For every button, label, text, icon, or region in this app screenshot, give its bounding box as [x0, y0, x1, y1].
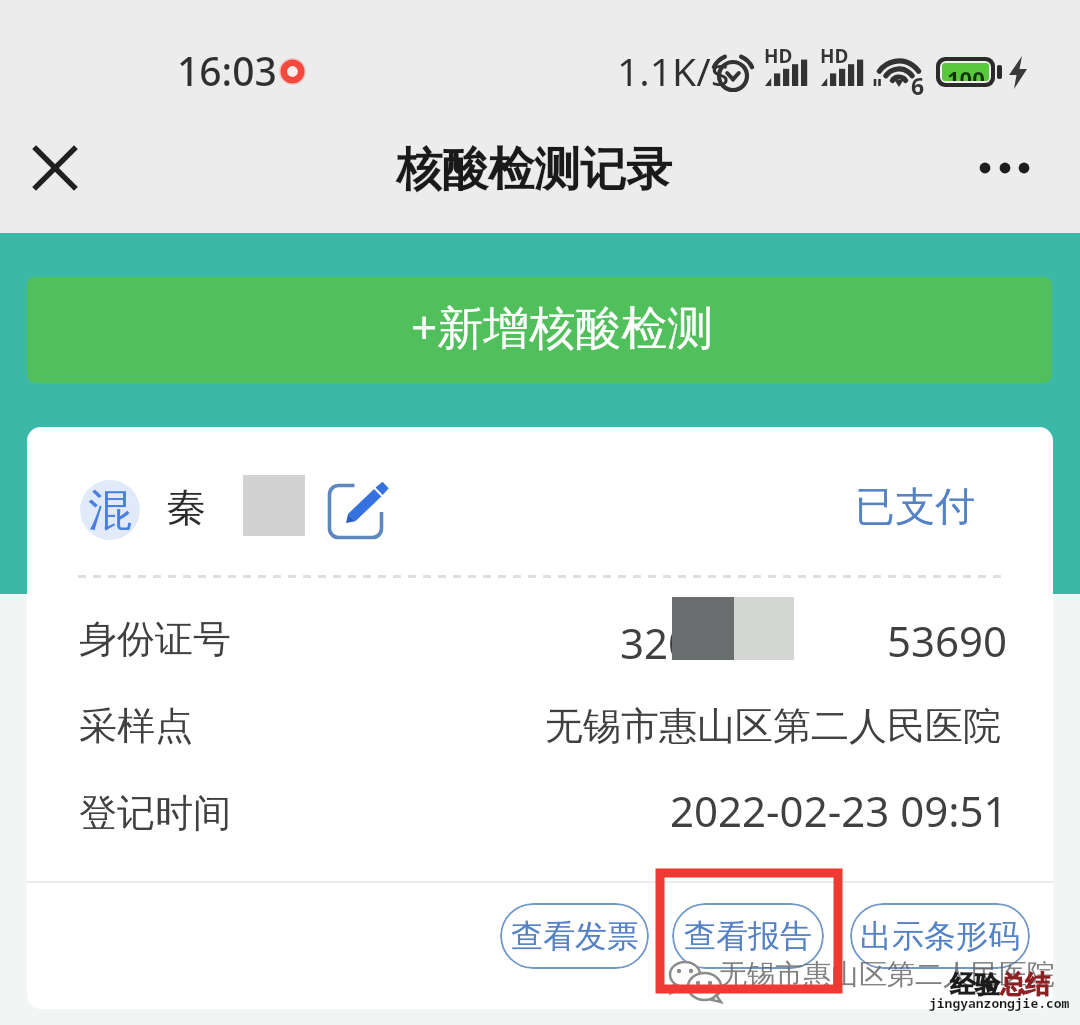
button[interactable]: Edit	[327, 482, 385, 538]
button[interactable]: More options	[956, 137, 1054, 199]
staticText: 身份证号	[79, 615, 231, 663]
staticText: HD	[764, 43, 793, 69]
staticText: 2022-02-23 09:51	[670, 782, 1008, 839]
staticText: 6	[911, 70, 925, 101]
button[interactable]: 查看报告	[672, 903, 824, 969]
staticText: 经验	[950, 969, 1000, 1000]
staticText: 核酸检测记录	[396, 141, 672, 199]
staticText: 采样点	[79, 702, 193, 750]
button[interactable]: 查看发票	[500, 903, 649, 969]
button[interactable]: Close	[9, 122, 101, 214]
staticText: 已支付	[855, 481, 975, 531]
staticText: 53690	[887, 612, 1008, 669]
staticText: 16:03	[177, 44, 277, 97]
staticText: HD	[820, 43, 849, 69]
staticText: 总结	[1000, 969, 1050, 1000]
button[interactable]: +新增核酸检测	[27, 277, 1052, 383]
staticText: 320	[620, 614, 693, 671]
staticText: 100	[947, 63, 985, 81]
staticText: 1.1K/s	[617, 44, 730, 97]
staticText: jingyanzongjie.com	[929, 994, 1070, 1012]
staticText: +新增核酸检测	[411, 295, 714, 358]
staticText: 混	[88, 483, 132, 538]
staticText: 登记时间	[79, 789, 231, 837]
staticText: 无锡市惠山区第二人民医院	[545, 702, 1001, 750]
staticText: 秦	[166, 482, 206, 532]
button[interactable]: 出示条形码	[850, 903, 1030, 969]
staticText: 查看报告	[684, 916, 812, 956]
staticText: 出示条形码	[860, 916, 1020, 956]
staticText: 查看发票	[511, 916, 639, 956]
staticText: 无锡市惠山区第二人民医院	[719, 957, 1055, 992]
